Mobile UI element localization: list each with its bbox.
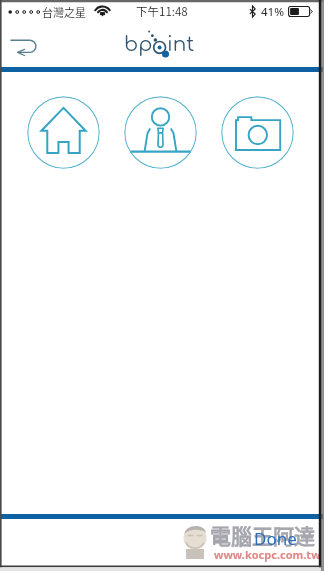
staticText: www.kocpc.com.tw <box>214 547 321 562</box>
staticText: 台灣之星 <box>42 4 86 20</box>
button[interactable]: Home <box>27 96 100 169</box>
button[interactable]: Back <box>2 25 46 63</box>
staticText: int <box>167 33 195 55</box>
button[interactable]: Camera <box>221 96 294 169</box>
button[interactable]: Profile <box>124 96 197 169</box>
staticText: 電腦王阿達 <box>210 520 315 550</box>
staticText: 下午11:48 <box>136 3 188 20</box>
staticText: bp <box>124 33 153 55</box>
staticText: 41% <box>261 4 284 20</box>
staticText: Done <box>254 527 297 550</box>
button[interactable]: Done <box>248 522 304 548</box>
